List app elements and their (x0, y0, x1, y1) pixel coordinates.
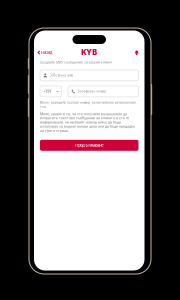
staticText: Назад (41, 50, 52, 55)
staticText: KYB (81, 48, 97, 57)
staticText: Собствено име (50, 74, 74, 77)
button[interactable]: Notifications (133, 49, 140, 56)
staticText: Моля, уверете се, че сте получили разреш… (40, 112, 135, 133)
staticText: Моля, въведете пълния номер, включително… (40, 101, 136, 108)
staticText: Създайте SMS съобщение за вашия клиент (40, 60, 112, 64)
button[interactable]: Назад (37, 48, 52, 57)
button[interactable]: +359 (40, 86, 61, 97)
staticText: +359 (44, 90, 52, 93)
staticText: Продължаване (75, 143, 103, 148)
button[interactable]: Продължаване (40, 140, 138, 151)
staticText: Телефонен номер (78, 90, 107, 93)
